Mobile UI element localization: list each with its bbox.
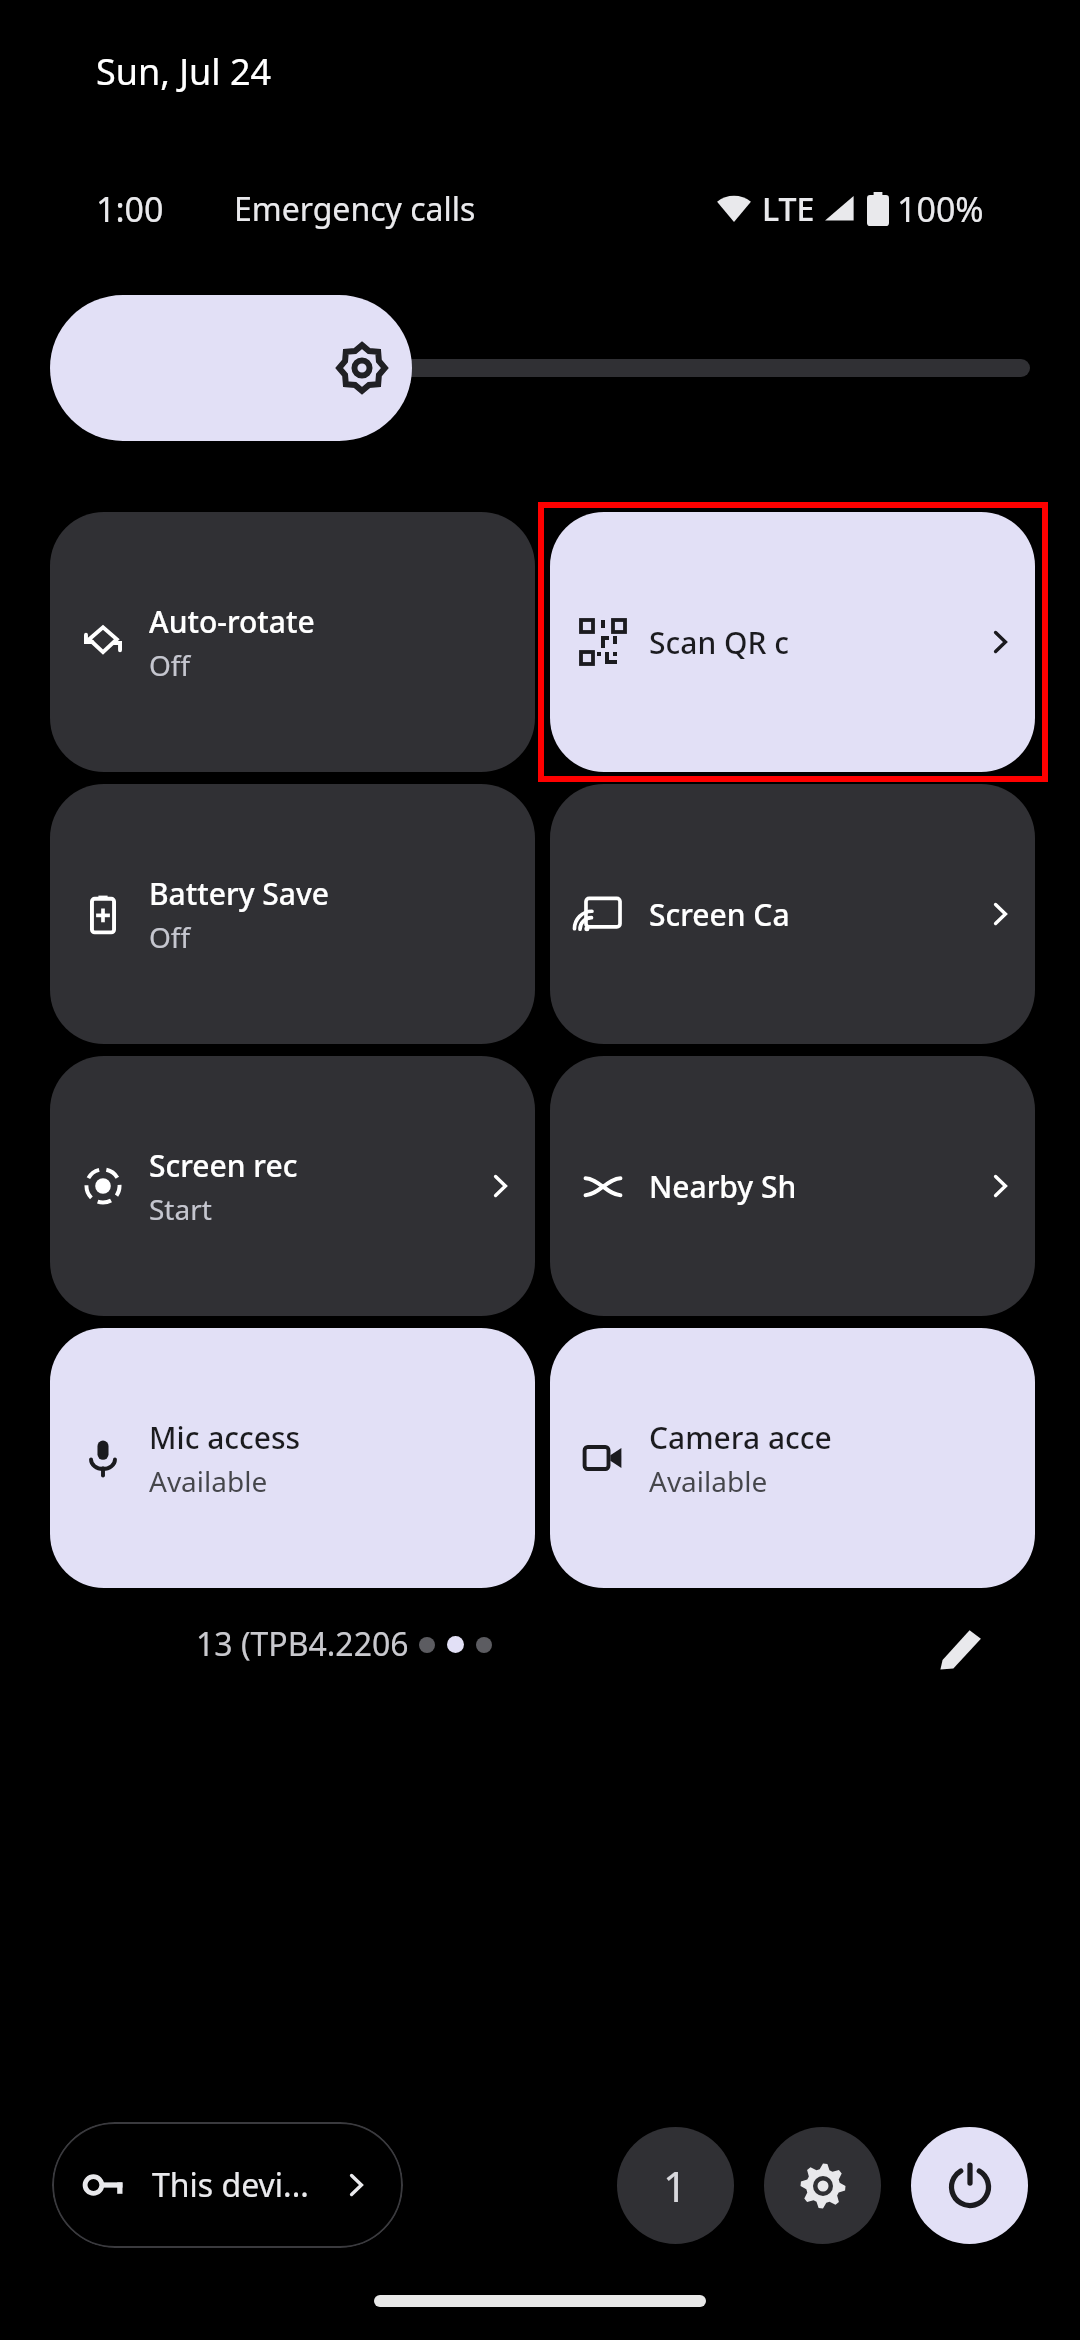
staticText: 1:00 [96, 186, 164, 232]
button[interactable]: This devi... [52, 2122, 403, 2248]
button[interactable]: Nearby Sh [550, 1056, 1035, 1316]
staticText: Mic access [149, 1417, 301, 1458]
button[interactable]: Screen Ca [550, 784, 1035, 1044]
staticText: Start [149, 1190, 212, 1228]
button[interactable]: Notifications: 1 [617, 2127, 734, 2244]
staticText: Sun, Jul 24 [96, 47, 272, 96]
button[interactable]: Screen rec [50, 1056, 535, 1316]
staticText: Available [649, 1462, 768, 1500]
button[interactable]: Auto-rotate [50, 512, 535, 772]
staticText: Nearby Sh [649, 1166, 797, 1207]
button[interactable]: Power [911, 2127, 1028, 2244]
button[interactable]: Scan QR c [550, 512, 1035, 772]
staticText: Battery Save [149, 873, 329, 914]
staticText: Available [149, 1462, 268, 1500]
staticText: 100% [897, 186, 984, 232]
staticText: 13 (TPB4.2206 [196, 1622, 409, 1666]
staticText: Screen Ca [649, 894, 790, 935]
staticText: This devi... [152, 2163, 309, 2207]
staticText: Scan QR c [649, 622, 790, 663]
button[interactable]: Brightness [50, 295, 1030, 441]
button[interactable]: Battery Save [50, 784, 535, 1044]
staticText: Auto-rotate [149, 601, 315, 642]
button[interactable]: Camera acce [550, 1328, 1035, 1588]
staticText: Off [149, 918, 191, 956]
button[interactable]: Edit tiles [912, 1598, 1012, 1698]
staticText: Camera acce [649, 1417, 832, 1458]
button[interactable]: Settings [764, 2127, 881, 2244]
staticText: Off [149, 646, 191, 684]
staticText: Screen rec [149, 1145, 298, 1186]
button[interactable]: Mic access [50, 1328, 535, 1588]
staticText: 1 [663, 2157, 688, 2214]
staticText: LTE [762, 187, 815, 231]
staticText: Emergency calls [234, 187, 476, 231]
